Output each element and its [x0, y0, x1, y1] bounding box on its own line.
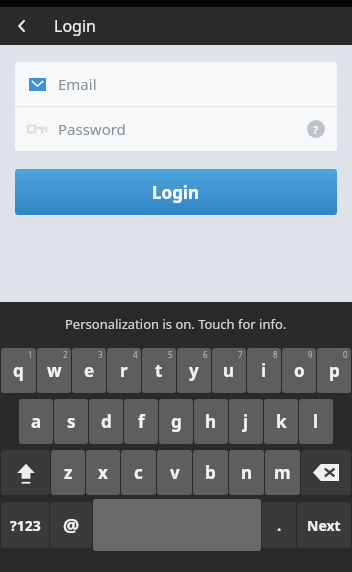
button[interactable]: f — [124, 399, 158, 444]
staticText: Password — [58, 119, 126, 139]
staticText: ? — [313, 122, 319, 137]
button[interactable]: h — [194, 399, 228, 444]
staticText: Next — [307, 516, 341, 535]
staticText: Login — [54, 15, 96, 37]
staticText: 2 — [63, 349, 68, 360]
button[interactable]: r — [107, 348, 141, 393]
button[interactable]: e — [72, 348, 106, 393]
staticText: 7 — [238, 349, 243, 360]
button[interactable]: p — [317, 348, 351, 393]
button[interactable]: Backspace — [301, 450, 351, 495]
staticText: l — [313, 410, 319, 433]
staticText: x — [98, 461, 108, 484]
staticText: g — [171, 410, 182, 433]
button[interactable]: s — [54, 399, 88, 444]
button[interactable]: y — [177, 348, 211, 393]
staticText: o — [294, 359, 305, 382]
staticText: Login — [152, 181, 200, 204]
button[interactable]: d — [89, 399, 123, 444]
staticText: q — [13, 359, 24, 382]
button[interactable]: l — [299, 399, 333, 444]
staticText: e — [84, 359, 95, 382]
button[interactable]: Login — [15, 169, 337, 215]
staticText: 6 — [203, 349, 208, 360]
button[interactable]: u — [212, 348, 246, 393]
button[interactable]: g — [159, 399, 193, 444]
staticText: m — [274, 461, 291, 484]
button[interactable]: c — [121, 450, 156, 495]
staticText: v — [170, 461, 180, 484]
button[interactable]: b — [193, 450, 228, 495]
button[interactable]: @ — [50, 502, 92, 548]
staticText: w — [47, 359, 62, 382]
button[interactable]: Personalization is on. Touch for info. — [0, 302, 352, 345]
button[interactable]: j — [229, 399, 263, 444]
staticText: d — [101, 410, 112, 433]
staticText: 5 — [168, 349, 173, 360]
button[interactable]: v — [157, 450, 192, 495]
staticText: 9 — [308, 349, 313, 360]
staticText: r — [120, 359, 128, 382]
staticText: ?123 — [10, 516, 41, 535]
staticText: 1 — [28, 349, 33, 360]
button[interactable]: Password — [15, 107, 337, 151]
button[interactable]: Password help — [307, 120, 325, 138]
button[interactable]: t — [142, 348, 176, 393]
staticText: Email — [58, 74, 97, 94]
staticText: j — [243, 410, 249, 433]
staticText: . — [277, 515, 282, 535]
staticText: n — [241, 461, 253, 484]
button[interactable]: ?123 — [1, 502, 49, 548]
button[interactable]: n — [229, 450, 264, 495]
button[interactable]: Next — [297, 502, 351, 548]
button[interactable]: k — [264, 399, 298, 444]
button[interactable]: o — [282, 348, 316, 393]
button[interactable]: Back — [0, 7, 44, 45]
staticText: u — [223, 359, 235, 382]
staticText: y — [189, 359, 199, 382]
staticText: 4 — [133, 349, 138, 360]
button[interactable]: z — [51, 450, 85, 495]
staticText: s — [67, 410, 76, 433]
staticText: a — [31, 410, 42, 433]
staticText: c — [134, 461, 143, 484]
staticText: b — [205, 461, 216, 484]
staticText: 3 — [98, 349, 103, 360]
staticText: 0 — [343, 349, 348, 360]
button[interactable]: Shift — [1, 450, 50, 495]
staticText: k — [276, 410, 287, 433]
button[interactable]: q — [1, 348, 36, 393]
staticText: t — [155, 359, 163, 382]
staticText: @ — [63, 513, 80, 538]
staticText: 8 — [273, 349, 278, 360]
button[interactable]: . — [262, 502, 296, 548]
staticText: p — [329, 359, 340, 382]
staticText: Personalization is on. Touch for info. — [65, 315, 287, 333]
button[interactable]: w — [37, 348, 71, 393]
staticText: z — [64, 461, 73, 484]
button[interactable]: Email — [15, 62, 337, 106]
button[interactable]: m — [265, 450, 300, 495]
button[interactable]: i — [247, 348, 281, 393]
staticText: f — [138, 410, 145, 433]
button[interactable]: a — [19, 399, 53, 444]
button[interactable]: x — [86, 450, 120, 495]
staticText: i — [261, 359, 267, 382]
staticText: h — [205, 410, 217, 433]
